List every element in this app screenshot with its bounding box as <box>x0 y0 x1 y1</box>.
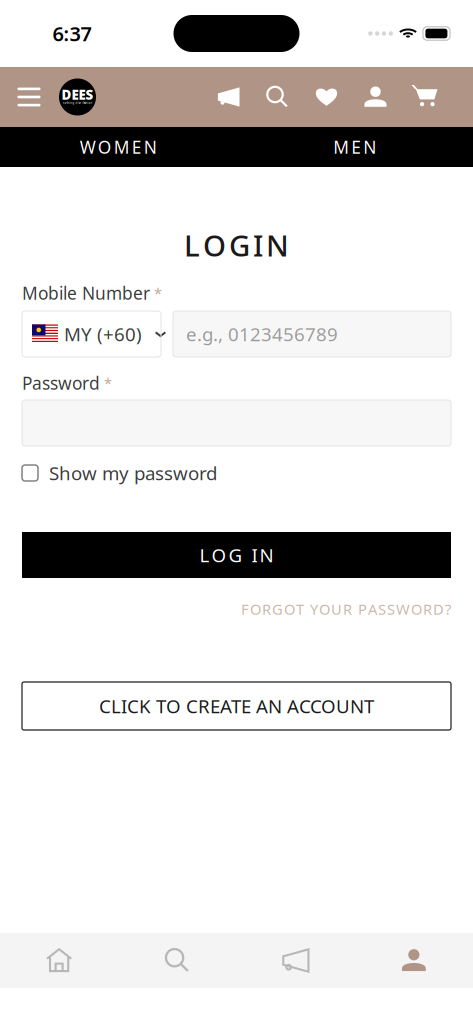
button[interactable]: Announcements <box>236 933 355 988</box>
staticText: * <box>104 373 112 393</box>
staticText: e.g., 0123456789 <box>186 322 338 346</box>
staticText: M E N <box>333 135 376 158</box>
staticText: Show my password <box>49 461 217 485</box>
button[interactable]: Search <box>118 933 236 988</box>
button[interactable]: W O M E N <box>0 127 236 167</box>
button[interactable]: M E N <box>236 127 473 167</box>
button[interactable]: Search <box>253 72 302 122</box>
button[interactable]: Account <box>351 72 400 122</box>
button[interactable]: e.g., 0123456789 <box>173 311 451 357</box>
button[interactable]: L O G I N <box>22 532 451 578</box>
staticText: CLICK TO CREATE AN ACCOUNT <box>99 694 374 718</box>
button[interactable]: Announcements <box>204 72 253 122</box>
staticText: * <box>154 283 162 303</box>
staticText: MY (+60) <box>64 322 142 346</box>
button[interactable]: Show my password <box>22 460 451 486</box>
staticText: nothing else fashion <box>62 101 92 105</box>
button[interactable]: CLICK TO CREATE AN ACCOUNT <box>22 682 451 730</box>
staticText: F O R G O T Y O U R P A S S W O R D ? <box>241 599 451 619</box>
staticText: DEES <box>61 86 93 103</box>
staticText: L O G I N <box>184 225 289 264</box>
button[interactable]: DEES home <box>59 78 96 115</box>
button[interactable]: Cart <box>400 72 449 122</box>
button[interactable]: Account <box>355 933 473 988</box>
staticText: L O G I N <box>199 543 273 567</box>
staticText: Password <box>22 371 100 394</box>
button[interactable]: Menu <box>12 77 46 117</box>
button[interactable]: Wishlist <box>302 72 351 122</box>
button[interactable]: Home <box>0 933 118 988</box>
staticText: Mobile Number <box>22 281 150 304</box>
button[interactable]: MY (+60) <box>22 311 161 357</box>
button[interactable]: F O R G O T Y O U R P A S S W O R D ? <box>22 599 451 619</box>
staticText: W O M E N <box>80 135 157 158</box>
staticText: 6:37 <box>52 20 91 47</box>
